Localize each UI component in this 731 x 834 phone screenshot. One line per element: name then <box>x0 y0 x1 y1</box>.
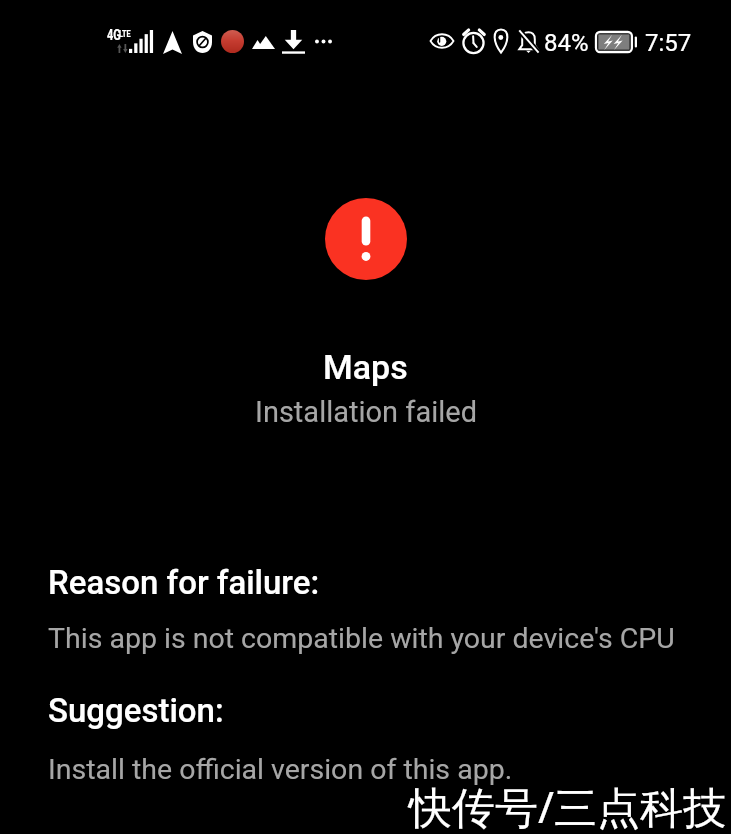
button[interactable]: Screenshot saved <box>252 36 275 49</box>
button[interactable]: Location services on <box>492 29 510 53</box>
staticText: 7:57 <box>645 29 692 57</box>
button[interactable]: Download in progress <box>282 30 305 54</box>
button[interactable]: Installation failed <box>325 198 407 280</box>
button[interactable]: Battery 84 percent, charging <box>596 32 637 52</box>
staticText: Maps <box>323 347 408 387</box>
staticText: 快传号/三点科技 <box>409 777 726 834</box>
staticText: 4G <box>107 26 121 44</box>
staticText: LTE <box>119 28 131 39</box>
staticText: Install the official version of this app… <box>48 753 513 786</box>
staticText: Suggestion: <box>48 691 224 730</box>
button[interactable]: Alarm set <box>461 29 485 53</box>
button[interactable]: Mobile signal strength <box>129 30 153 53</box>
staticText: Installation failed <box>255 395 477 429</box>
button[interactable]: Eye comfort mode on <box>430 32 454 50</box>
staticText: 84% <box>544 29 589 57</box>
staticText: Reason for failure: <box>48 563 320 602</box>
staticText: This app is not compatible with your dev… <box>48 622 675 655</box>
button[interactable]: Blocked by security shield <box>193 31 212 53</box>
button[interactable]: Location in use <box>163 31 182 54</box>
button[interactable]: More notifications <box>315 37 332 46</box>
button[interactable]: Screen recording <box>221 30 244 53</box>
button[interactable]: Ringer silenced <box>518 30 539 53</box>
